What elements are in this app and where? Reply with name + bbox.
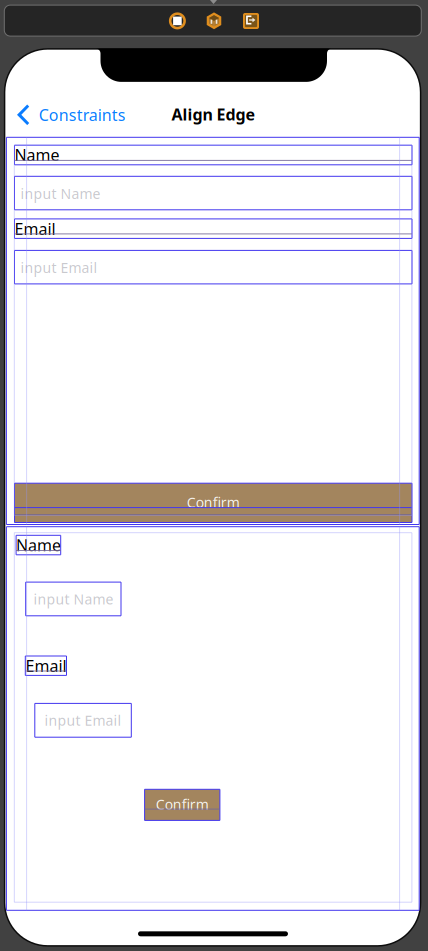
staticText: Confirm: [187, 493, 240, 512]
button[interactable]: Confirm: [145, 789, 220, 820]
button[interactable]: Stop preview: [168, 12, 186, 30]
staticText: input Name: [20, 184, 100, 203]
staticText: input Name: [33, 589, 113, 609]
staticText: input Email: [20, 258, 97, 277]
staticText: Name: [16, 534, 61, 556]
staticText: Email: [25, 655, 66, 677]
staticText: Confirm: [156, 795, 209, 814]
staticText: Align Edge: [171, 103, 255, 125]
staticText: Email: [14, 218, 55, 240]
button[interactable]: Inspect view hierarchy: [207, 12, 221, 29]
staticText: Name: [14, 144, 59, 166]
staticText: Constraints: [39, 104, 126, 126]
button[interactable]: Open preview in simulator: [243, 13, 259, 29]
button[interactable]: Constraints: [12, 94, 128, 136]
button[interactable]: Confirm: [14, 483, 412, 522]
staticText: input Email: [45, 711, 122, 730]
